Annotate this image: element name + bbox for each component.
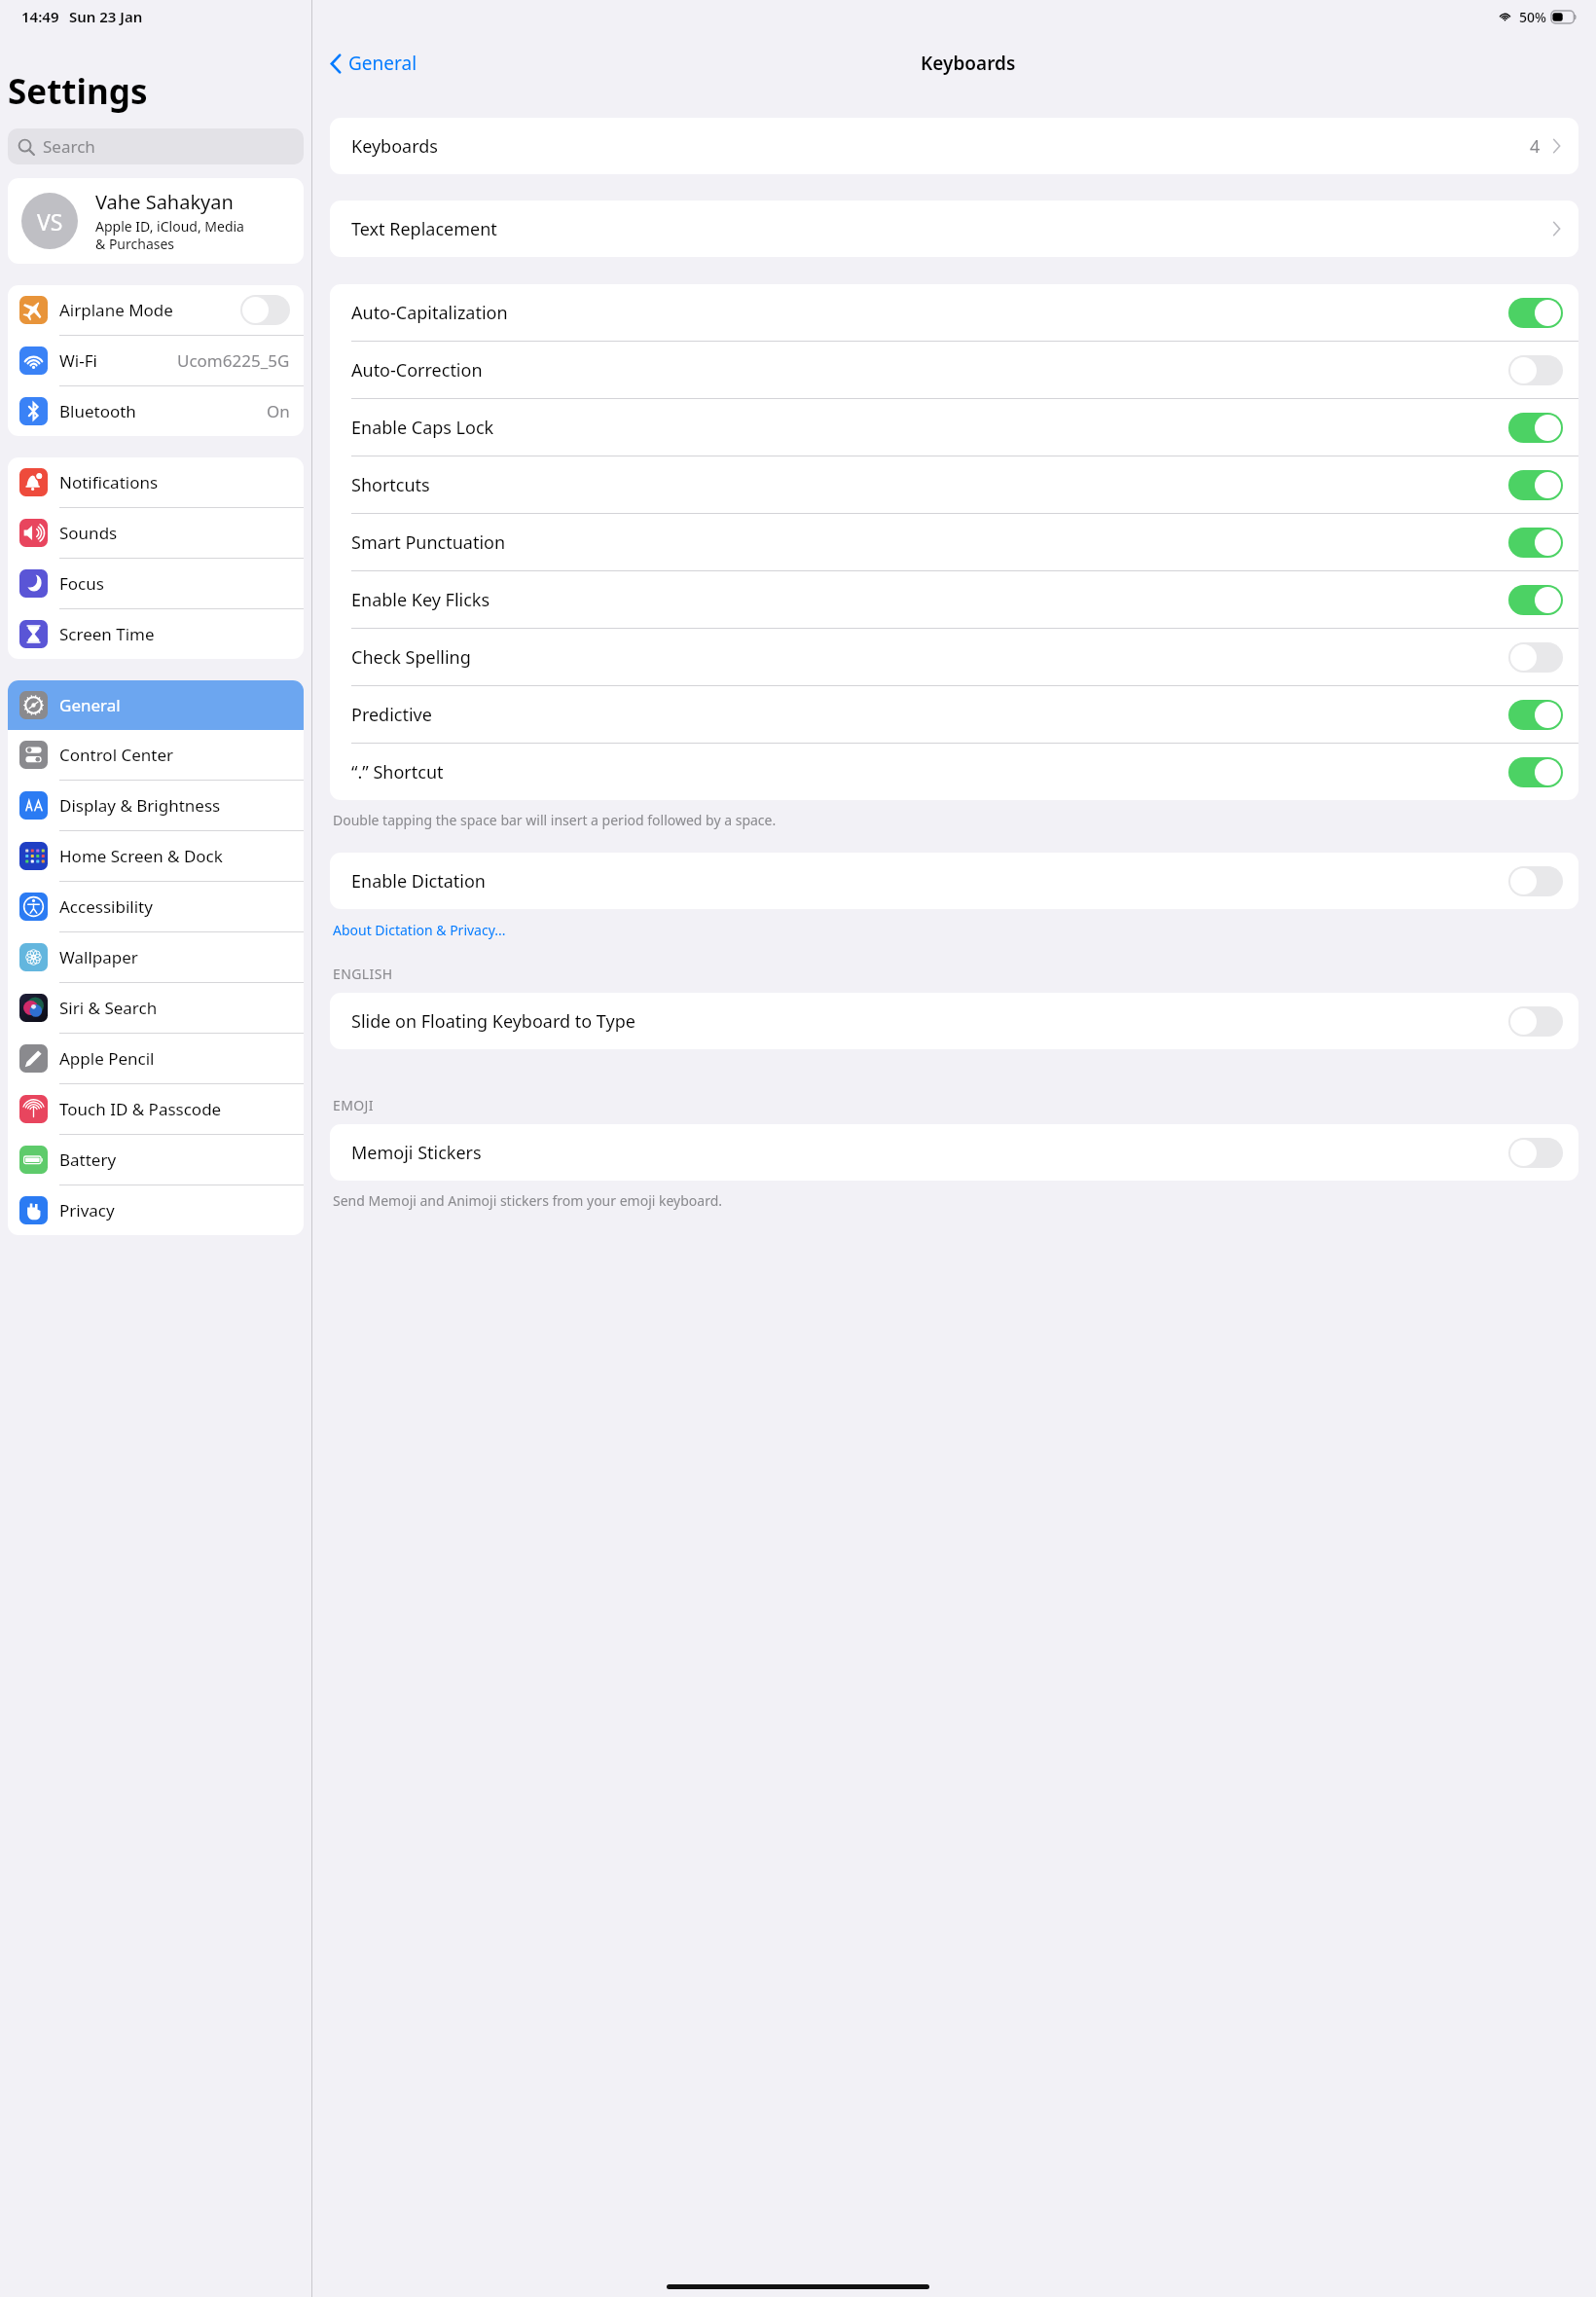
staticText: 50% xyxy=(1519,8,1546,26)
button[interactable]: On xyxy=(1508,470,1563,500)
button[interactable]: Predictive xyxy=(330,686,1578,743)
button[interactable]: Accessibility xyxy=(8,882,304,931)
staticText: Accessibility xyxy=(59,895,153,918)
staticText: Shortcuts xyxy=(351,473,430,497)
button[interactable]: Check Spelling xyxy=(330,629,1578,685)
staticText: Privacy xyxy=(59,1199,115,1221)
staticText: Enable Key Flicks xyxy=(351,588,490,612)
button[interactable]: Off xyxy=(1508,642,1563,673)
staticText: Focus xyxy=(59,572,104,595)
button[interactable]: Auto-Correction xyxy=(330,342,1578,398)
staticText: Touch ID & Passcode xyxy=(59,1098,222,1120)
staticText: Wi-Fi xyxy=(59,349,97,372)
button[interactable]: On xyxy=(1508,413,1563,443)
staticText: General xyxy=(59,694,121,716)
staticText: Battery xyxy=(59,1148,117,1171)
button[interactable]: Search xyxy=(8,128,304,164)
button[interactable]: Off xyxy=(1508,355,1563,385)
button[interactable]: Text Replacement xyxy=(330,201,1578,257)
staticText: Enable Caps Lock xyxy=(351,416,494,440)
button[interactable]: Smart Punctuation xyxy=(330,514,1578,570)
staticText: Text Replacement xyxy=(351,217,497,241)
staticText: Wallpaper xyxy=(59,946,138,968)
button[interactable]: VS xyxy=(8,178,304,264)
button[interactable]: Enable Key Flicks xyxy=(330,571,1578,628)
staticText: 14:49 xyxy=(21,7,59,26)
button[interactable]: Battery xyxy=(8,1135,304,1185)
button[interactable]: General xyxy=(8,680,304,730)
button[interactable]: Focus xyxy=(8,559,304,608)
button[interactable]: Touch ID & Passcode xyxy=(8,1084,304,1134)
button[interactable]: General xyxy=(326,45,421,82)
staticText: Bluetooth xyxy=(59,400,136,422)
button[interactable]: Wallpaper xyxy=(8,932,304,982)
staticText: General xyxy=(348,51,417,76)
staticText: Notifications xyxy=(59,471,159,493)
staticText: “.” Shortcut xyxy=(351,760,444,784)
staticText: Apple ID, iCloud, Media & Purchases xyxy=(95,217,244,253)
staticText: ENGLISH xyxy=(333,965,393,983)
button[interactable]: “.” Shortcut xyxy=(330,744,1578,800)
button[interactable]: Bluetooth xyxy=(8,386,304,436)
staticText: Display & Brightness xyxy=(59,794,221,817)
staticText: On xyxy=(267,400,290,422)
button[interactable]: Off xyxy=(1508,866,1563,896)
button[interactable]: On xyxy=(1508,757,1563,787)
button[interactable]: Enable Caps Lock xyxy=(330,399,1578,456)
button[interactable]: Memoji Stickers xyxy=(330,1124,1578,1181)
button[interactable]: On xyxy=(1508,298,1563,328)
staticText: Airplane Mode xyxy=(59,299,173,321)
staticText: Home Screen & Dock xyxy=(59,845,223,867)
staticText: Screen Time xyxy=(59,623,155,645)
button[interactable]: On xyxy=(1508,585,1563,615)
staticText: Siri & Search xyxy=(59,997,158,1019)
staticText: About Dictation & Privacy... xyxy=(333,921,506,939)
staticText: Memoji Stickers xyxy=(351,1141,482,1165)
staticText: 4 xyxy=(1530,134,1541,159)
button[interactable]: Display & Brightness xyxy=(8,781,304,830)
button[interactable]: Home Screen & Dock xyxy=(8,831,304,881)
staticText: Predictive xyxy=(351,703,432,727)
staticText: Check Spelling xyxy=(351,645,471,670)
staticText: Settings xyxy=(8,68,148,115)
button[interactable]: Screen Time xyxy=(8,609,304,659)
button[interactable]: Auto-Capitalization xyxy=(330,284,1578,341)
staticText: Ucom6225_5G xyxy=(177,349,290,372)
staticText: Auto-Correction xyxy=(351,358,483,383)
button[interactable]: Shortcuts xyxy=(330,456,1578,513)
button[interactable]: Apple Pencil xyxy=(8,1034,304,1083)
staticText: Apple Pencil xyxy=(59,1047,155,1070)
staticText: Double tapping the space bar will insert… xyxy=(333,811,777,829)
button[interactable]: About Dictation & Privacy... xyxy=(333,921,506,939)
button[interactable]: Slide on Floating Keyboard to Type xyxy=(330,993,1578,1049)
button[interactable]: Off xyxy=(240,295,290,325)
button[interactable]: Airplane Mode xyxy=(8,285,304,335)
button[interactable]: Keyboards xyxy=(330,118,1578,174)
staticText: VS xyxy=(37,206,63,237)
button[interactable]: Wi-Fi xyxy=(8,336,304,385)
staticText: Vahe Sahakyan xyxy=(95,189,234,215)
staticText: Send Memoji and Animoji stickers from yo… xyxy=(333,1191,723,1210)
staticText: Keyboards xyxy=(351,134,438,159)
button[interactable]: Off xyxy=(1508,1138,1563,1168)
staticText: Search xyxy=(43,135,95,158)
button[interactable]: Notifications xyxy=(8,457,304,507)
button[interactable]: On xyxy=(1508,528,1563,558)
staticText: Slide on Floating Keyboard to Type xyxy=(351,1009,635,1034)
staticText: Keyboards xyxy=(921,51,1016,76)
button[interactable]: On xyxy=(1508,700,1563,730)
staticText: Sun 23 Jan xyxy=(69,7,143,26)
staticText: EMOJI xyxy=(333,1096,374,1114)
button[interactable]: Sounds xyxy=(8,508,304,558)
staticText: Enable Dictation xyxy=(351,869,486,893)
button[interactable]: Siri & Search xyxy=(8,983,304,1033)
staticText: Sounds xyxy=(59,522,118,544)
staticText: Auto-Capitalization xyxy=(351,301,508,325)
button[interactable]: Enable Dictation xyxy=(330,853,1578,909)
staticText: Smart Punctuation xyxy=(351,530,506,555)
button[interactable]: Off xyxy=(1508,1006,1563,1037)
staticText: Control Center xyxy=(59,744,174,766)
button[interactable]: Privacy xyxy=(8,1185,304,1235)
button[interactable]: Control Center xyxy=(8,730,304,780)
